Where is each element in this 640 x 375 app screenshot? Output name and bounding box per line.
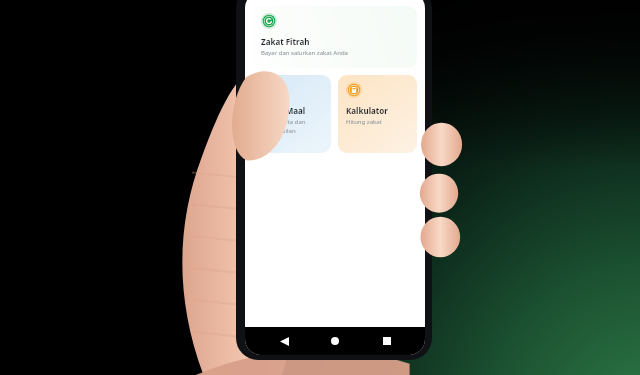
- staticText: Bayar dan salurkan zakat Anda: [261, 49, 348, 57]
- staticText: Zakat harta dan penghasilan: [261, 118, 323, 135]
- button[interactable]: Recent apps: [374, 328, 400, 354]
- button[interactable]: Zakat Fitrah: [253, 6, 417, 68]
- button[interactable]: Zakat Maal: [253, 75, 331, 153]
- staticText: Zakat Maal: [261, 105, 306, 116]
- button[interactable]: Home: [322, 328, 348, 354]
- button[interactable]: Back: [271, 328, 297, 354]
- staticText: Kalkulator: [346, 105, 388, 116]
- staticText: Hitung zakat: [346, 118, 382, 126]
- button[interactable]: Kalkulator: [338, 75, 417, 153]
- staticText: Zakat Fitrah: [261, 36, 310, 47]
